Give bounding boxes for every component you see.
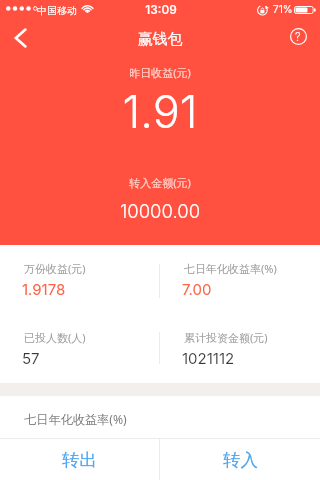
- staticText: 昨日收益(元): [0, 65, 320, 80]
- staticText: 转入: [223, 449, 258, 471]
- staticText: 赢钱包: [0, 30, 320, 49]
- staticText: 中国移动: [37, 4, 77, 17]
- staticText: 10000.00: [0, 200, 320, 222]
- staticText: 1.91: [0, 84, 320, 138]
- staticText: 已投人数(人): [24, 330, 86, 345]
- staticText: 转入金额(元): [0, 175, 320, 190]
- staticText: 13:09: [1, 2, 320, 17]
- staticText: 七日年化收益率(%): [184, 261, 277, 276]
- staticText: 71%: [273, 3, 293, 15]
- button[interactable]: Back: [0, 20, 40, 56]
- staticText: 七日年化收益率(%): [24, 411, 127, 428]
- staticText: 57: [22, 349, 40, 367]
- staticText: 1.9178: [22, 280, 66, 298]
- button[interactable]: 转入: [160, 439, 320, 480]
- staticText: 万份收益(元): [24, 261, 86, 276]
- staticText: 转出: [62, 449, 97, 471]
- staticText: ?: [295, 30, 301, 43]
- staticText: 7.00: [182, 280, 212, 298]
- button[interactable]: Help: [278, 18, 318, 54]
- staticText: 1021112: [182, 349, 235, 367]
- button[interactable]: 转出: [0, 439, 159, 480]
- staticText: 累计投资金额(元): [184, 330, 268, 345]
